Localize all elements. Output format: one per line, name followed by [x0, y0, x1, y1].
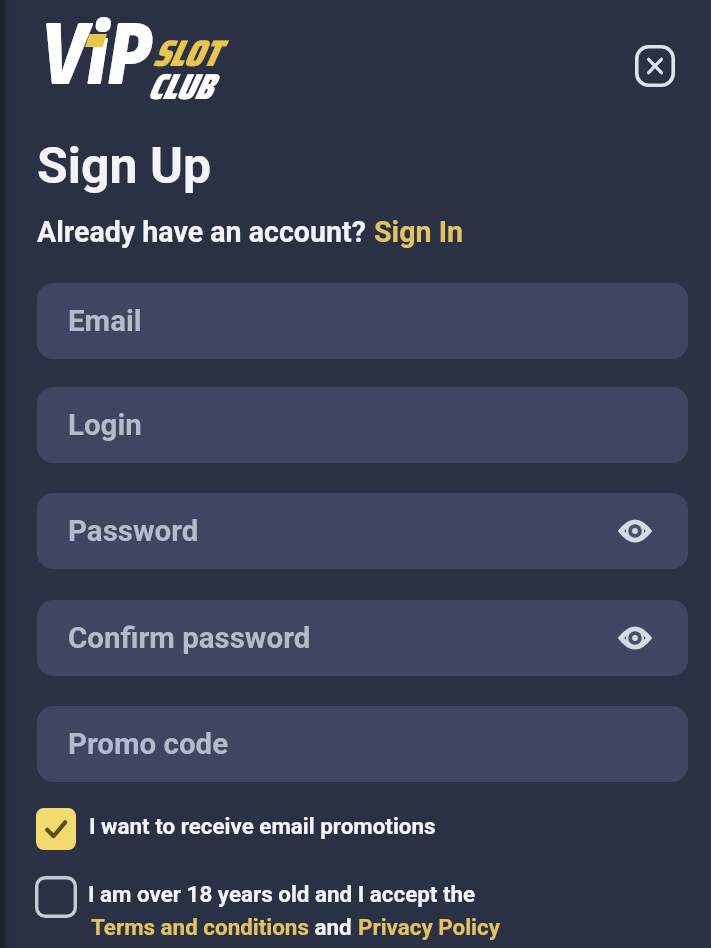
button[interactable]: Show password — [617, 621, 653, 655]
button[interactable]: Password — [37, 493, 688, 569]
button[interactable]: Confirm password — [37, 600, 688, 676]
staticText: ViP — [39, 0, 151, 112]
staticText: I am over 18 years old and I accept the — [88, 881, 476, 907]
staticText: Email — [68, 304, 142, 339]
staticText: Sign Up — [37, 137, 212, 196]
staticText: Promo code — [68, 727, 229, 762]
button[interactable]: Show password — [617, 514, 653, 548]
staticText: SLOT — [152, 24, 218, 82]
staticText: Password — [68, 514, 199, 549]
button[interactable]: I am over 18 years old and I accept the — [35, 876, 497, 935]
staticText: I want to receive email promotions — [89, 813, 436, 839]
staticText: Already have an account? — [37, 215, 374, 249]
button[interactable]: Promo code — [37, 706, 688, 782]
staticText: and — [309, 914, 358, 940]
staticText: CLUB — [147, 58, 212, 115]
button[interactable]: I want to receive email promotions — [36, 803, 436, 849]
button[interactable]: Privacy Policy — [358, 914, 500, 940]
button[interactable]: Email — [37, 283, 688, 359]
button[interactable]: Terms and conditions — [91, 914, 309, 940]
staticText: Login — [68, 408, 142, 443]
button[interactable]: Sign In — [374, 215, 464, 249]
button[interactable]: Login — [37, 387, 688, 463]
button[interactable]: Close — [635, 45, 675, 87]
staticText: Confirm password — [68, 621, 311, 656]
